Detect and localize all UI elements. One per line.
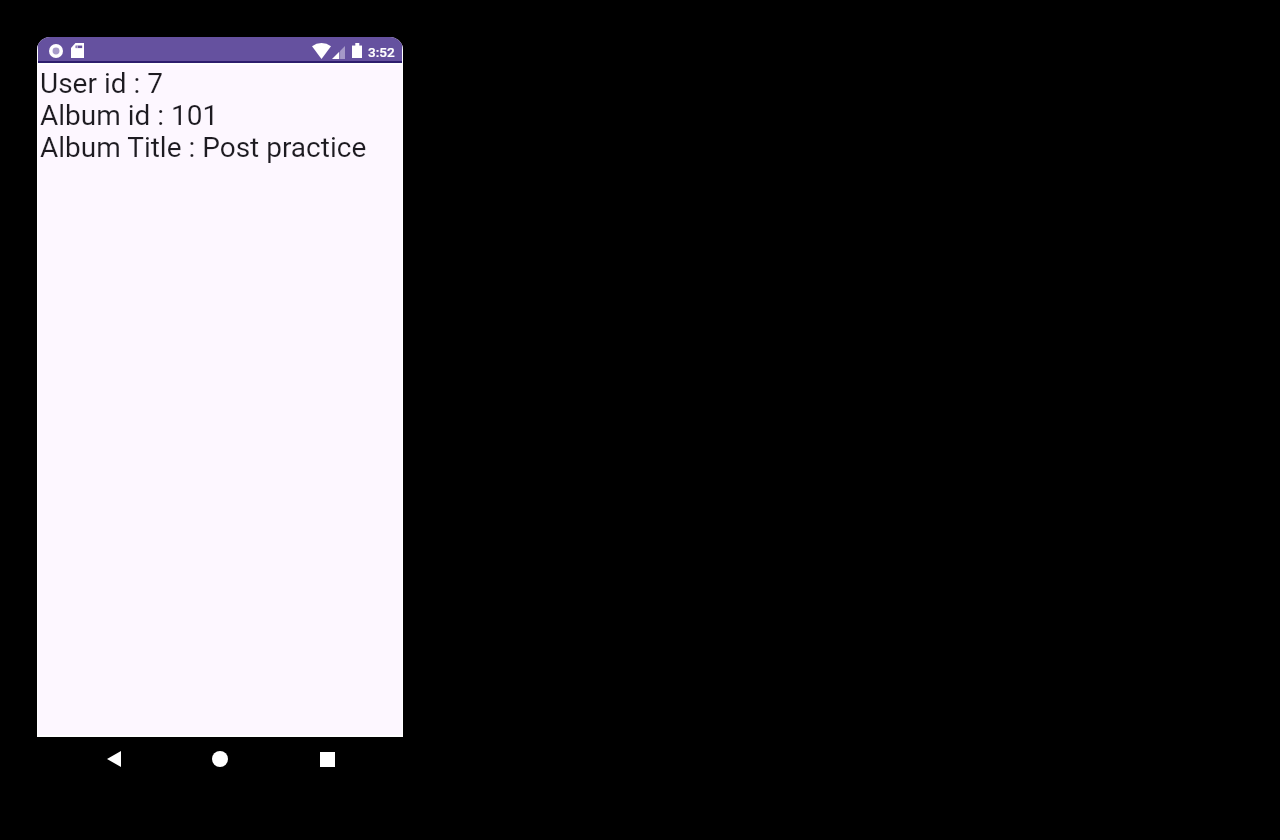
staticText: User id : 7 bbox=[40, 68, 163, 100]
staticText: Album id : 101 bbox=[40, 100, 219, 132]
staticText: 3:52 bbox=[368, 44, 395, 60]
button[interactable]: Home bbox=[190, 729, 250, 789]
button[interactable]: Back bbox=[84, 729, 144, 789]
button[interactable]: Recent apps bbox=[297, 729, 358, 789]
staticText: Album Title : Post practice bbox=[40, 132, 367, 164]
